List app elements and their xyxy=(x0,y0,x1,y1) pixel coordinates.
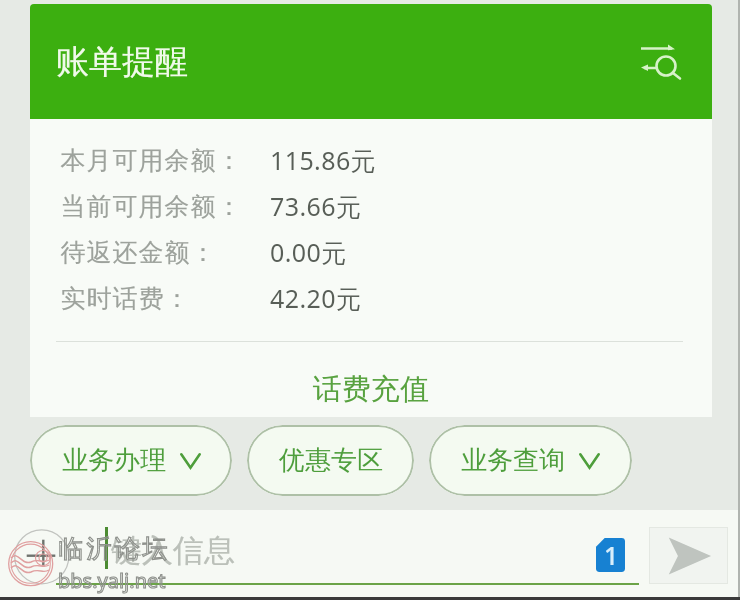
staticText: 临沂论坛 xyxy=(57,533,169,564)
staticText: 当前可用余额： xyxy=(60,191,242,222)
staticText: 本月可用余额： xyxy=(60,145,242,176)
button[interactable]: 话费充值 xyxy=(30,342,712,417)
staticText: 业务办理 xyxy=(62,444,166,477)
button[interactable]: 实时话费： xyxy=(30,275,712,321)
staticText: 键入信息 xyxy=(111,531,235,570)
button[interactable]: 当前可用余额： xyxy=(30,183,712,229)
staticText: 优惠专区 xyxy=(279,444,383,477)
button[interactable]: 优惠专区 xyxy=(247,425,414,496)
button[interactable]: 1 unread xyxy=(596,538,625,572)
staticText: 业务查询 xyxy=(461,444,565,477)
button[interactable]: 业务办理 xyxy=(30,425,232,496)
staticText: 待返还金额： xyxy=(60,237,216,268)
staticText: 42.20元 xyxy=(270,281,362,315)
staticText: 73.66元 xyxy=(270,189,362,223)
staticText: 115.86元 xyxy=(270,143,377,177)
staticText: 账单提醒 xyxy=(56,41,188,83)
button[interactable]: 业务查询 xyxy=(429,425,632,496)
button[interactable]: 本月可用余额： xyxy=(30,137,712,183)
button[interactable]: 待返还金额： xyxy=(30,229,712,275)
staticText: 0.00元 xyxy=(270,235,347,269)
button[interactable]: Send xyxy=(649,527,728,584)
staticText: bbs.yalj.net xyxy=(58,567,166,594)
staticText: 话费充值 xyxy=(313,371,429,408)
staticText: 实时话费： xyxy=(60,283,190,314)
staticText: 1 xyxy=(604,538,619,572)
button[interactable]: Search xyxy=(631,34,691,90)
button[interactable]: Message input field xyxy=(56,520,639,585)
